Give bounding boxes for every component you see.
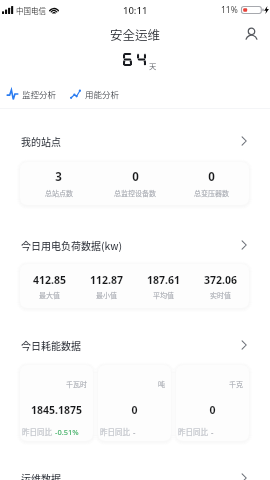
button[interactable]: 我的站点 (0, 132, 270, 149)
staticText: 总站点数 (45, 188, 73, 198)
staticText: 372.06 (204, 273, 237, 287)
staticText: 我的站点 (21, 134, 61, 148)
staticText: 1845.1875 (20, 403, 93, 417)
staticText: 用能分析 (85, 88, 120, 100)
staticText: 今日耗能数据 (21, 338, 81, 352)
staticText: 千克 (229, 379, 243, 389)
staticText: - (211, 427, 214, 437)
button[interactable]: 千瓦时 (20, 365, 93, 441)
button[interactable]: Account (240, 23, 262, 45)
staticText: 安全运维 (110, 25, 161, 43)
button[interactable]: 今日耗能数据 (0, 336, 270, 353)
staticText: 昨日同比 (178, 426, 208, 437)
staticText: 10:11 (123, 4, 148, 17)
button[interactable]: 今日用电负荷数据(kw) (0, 236, 270, 253)
staticText: 平均值 (153, 290, 174, 300)
staticText: 千瓦时 (66, 379, 87, 389)
staticText: 昨日同比 (100, 426, 130, 437)
staticText: 最小值 (96, 290, 117, 300)
button[interactable]: 吨 (98, 365, 171, 441)
staticText: 总监控设备数 (114, 188, 156, 198)
staticText: 0 (98, 403, 171, 417)
staticText: 3 (55, 169, 62, 185)
staticText: 0 (208, 169, 215, 185)
staticText: 今日用电负荷数据(kw) (21, 238, 123, 252)
staticText: 0 (132, 169, 139, 185)
staticText: 实时值 (210, 290, 231, 300)
staticText: 112.87 (90, 273, 123, 287)
staticText: 中国电信 (16, 5, 46, 16)
button[interactable]: 用能分析 (70, 85, 120, 103)
staticText: 11% (221, 4, 238, 16)
staticText: 总变压器数 (194, 188, 229, 198)
staticText: 412.85 (33, 273, 66, 287)
staticText: 最大值 (39, 290, 60, 300)
staticText: -0.51% (55, 427, 79, 437)
staticText: 运维数据 (21, 471, 61, 480)
staticText: 吨 (158, 379, 165, 389)
button[interactable]: 监控分析 (7, 85, 57, 103)
staticText: 187.61 (147, 273, 180, 287)
staticText: 0 (176, 403, 249, 417)
staticText: - (133, 427, 136, 437)
button[interactable]: 千克 (176, 365, 249, 441)
staticText: 天 (149, 61, 157, 72)
staticText: 昨日同比 (22, 426, 52, 437)
button[interactable]: 3 (20, 162, 249, 205)
button[interactable]: 412.85 (20, 264, 249, 308)
button[interactable]: 运维数据 (0, 469, 270, 480)
staticText: 监控分析 (22, 88, 57, 100)
